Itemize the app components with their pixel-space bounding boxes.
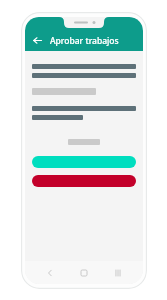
button[interactable]: Recents [109, 264, 127, 282]
button[interactable]: Back [41, 264, 59, 282]
button[interactable]: Rechazar [32, 175, 136, 187]
button[interactable]: Aprobar [32, 156, 136, 168]
button[interactable]: Home [75, 264, 93, 282]
button[interactable]: Back [30, 33, 45, 48]
staticText: Aprobar trabajos [50, 35, 119, 47]
